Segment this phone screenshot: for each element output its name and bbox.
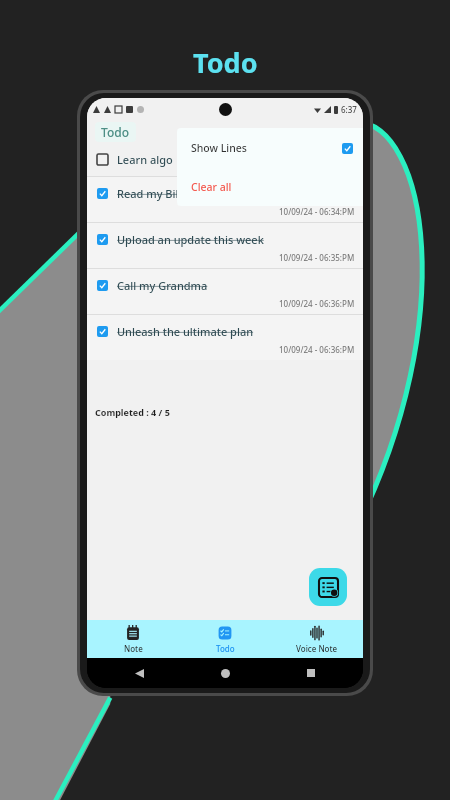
staticText: Learn algo — [117, 152, 173, 167]
button[interactable]: Read my Bible before bed — [87, 176, 363, 222]
staticText: Todo — [101, 124, 130, 140]
staticText: Voice Note — [296, 643, 338, 654]
button[interactable]: Voice Note — [271, 620, 363, 658]
button[interactable]: Todo — [95, 122, 136, 142]
staticText: 10/09/24 - 06:36:PM — [279, 298, 355, 309]
staticText: Upload an update this week — [117, 232, 264, 247]
staticText: Show Lines — [191, 141, 247, 155]
button[interactable]: Note — [87, 620, 179, 658]
staticText: Unleash the ultimate plan — [117, 324, 254, 339]
button[interactable]: Show Lines — [177, 128, 363, 168]
button[interactable]: Unleash the ultimate plan — [87, 314, 363, 360]
staticText: 10/09/24 - 06:35:PM — [279, 252, 355, 263]
staticText: Clear all — [191, 180, 232, 194]
staticText: Completed : 4 / 5 — [95, 406, 170, 418]
staticText: 10/09/24 - 06:34:PM — [279, 206, 355, 217]
button[interactable]: Learn algo — [87, 142, 363, 176]
staticText: Call my Grandma — [117, 278, 208, 293]
button[interactable]: Todo — [179, 620, 271, 658]
button[interactable]: Call my Grandma — [87, 268, 363, 314]
staticText: Read my Bible before bed — [117, 186, 252, 201]
staticText: Note — [124, 643, 143, 654]
staticText: 6:37 — [341, 104, 357, 115]
button[interactable]: Clear all — [177, 168, 363, 206]
button[interactable]: Upload an update this week — [87, 222, 363, 268]
staticText: Todo — [216, 643, 235, 654]
staticText: 10/09/24 - 06:36:PM — [279, 344, 355, 355]
button[interactable]: Add todo — [309, 568, 347, 606]
staticText: Todo — [193, 44, 258, 81]
